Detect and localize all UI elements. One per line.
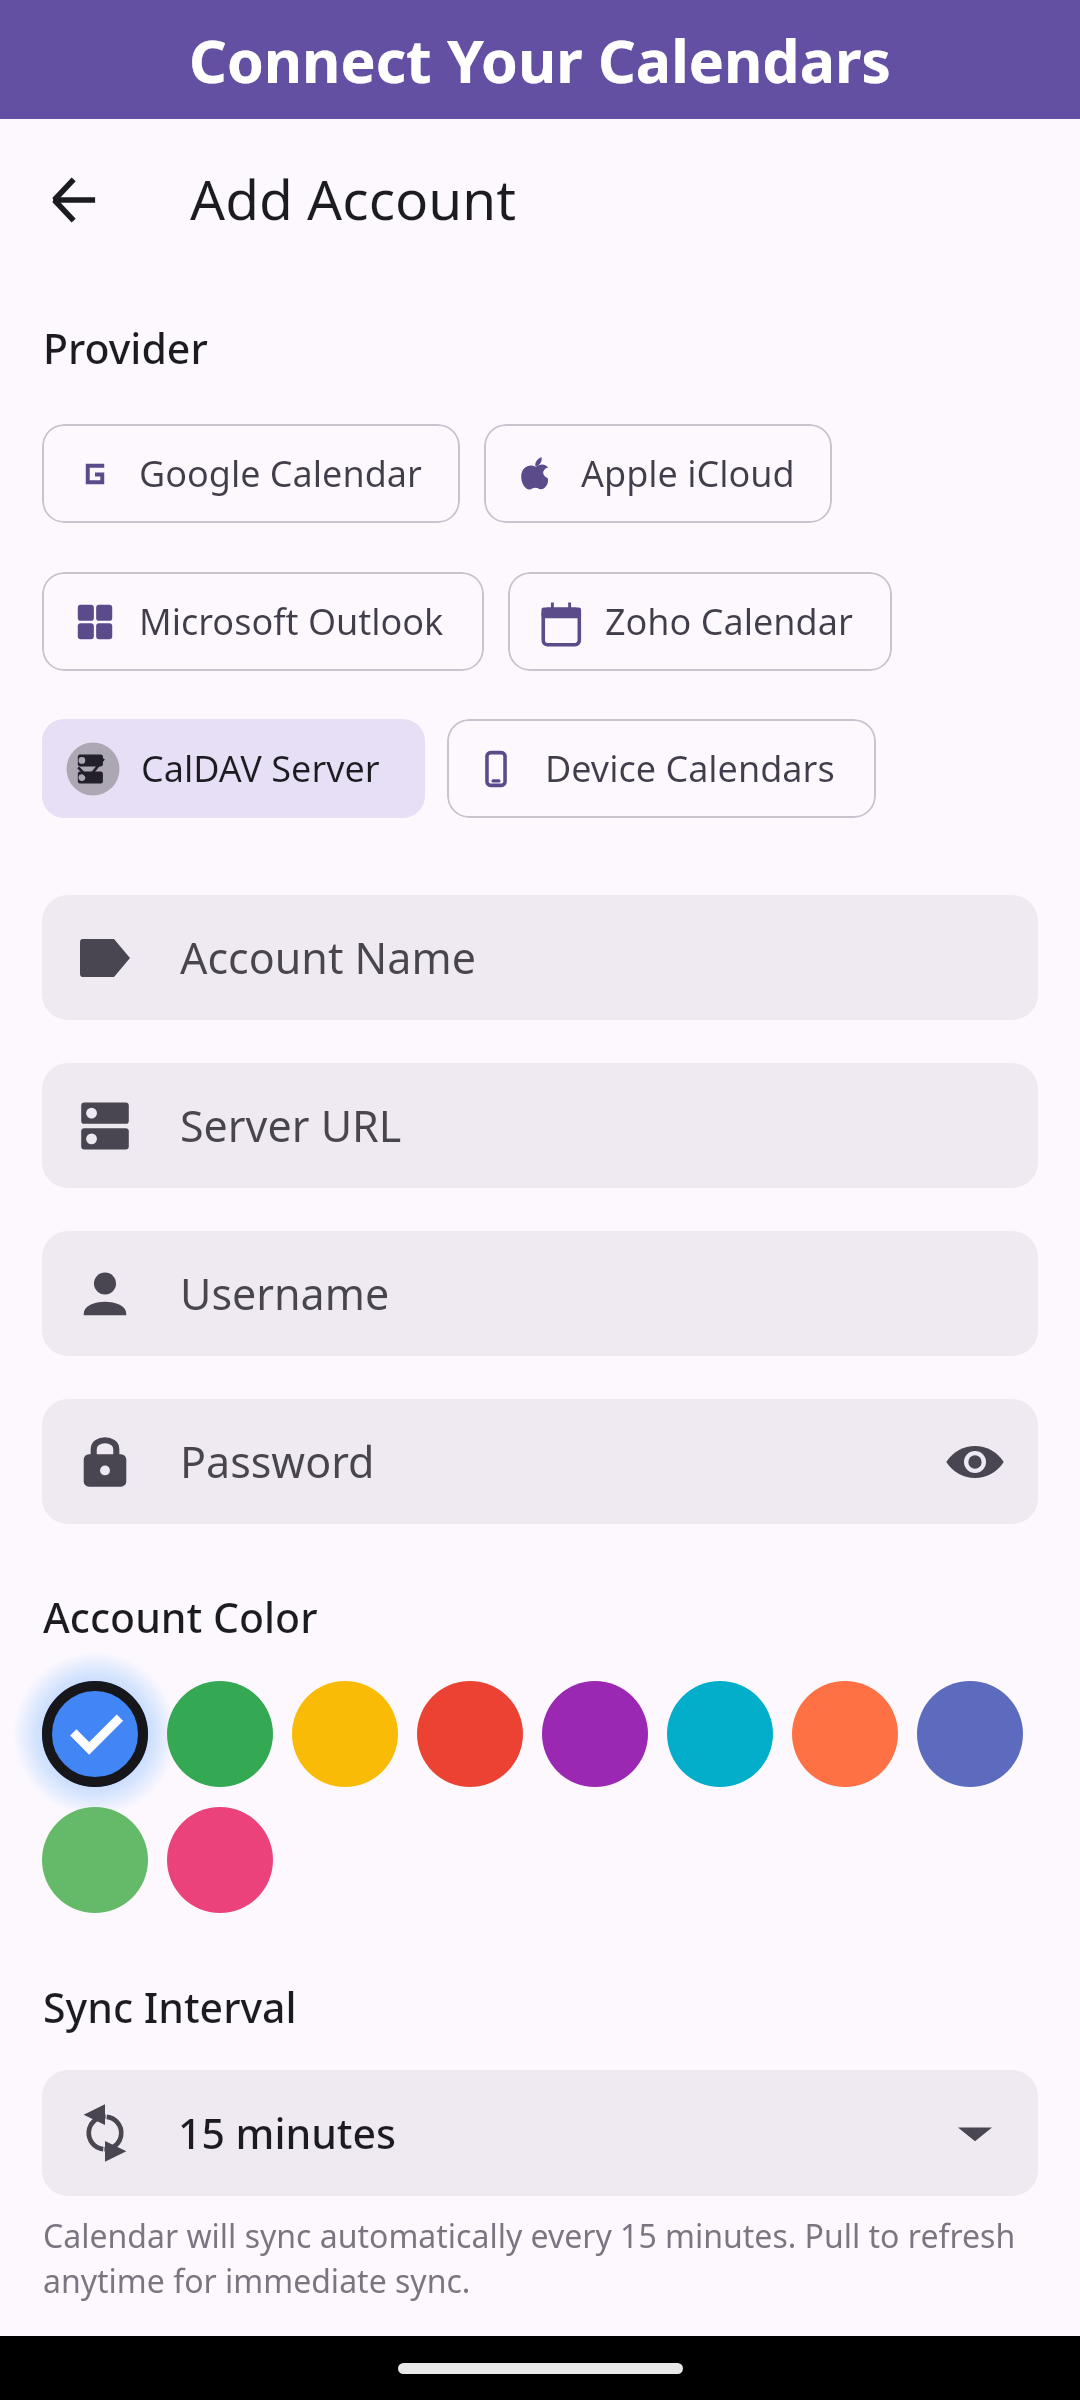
button[interactable]: Colour swatch [292, 1681, 398, 1787]
staticText: Google Calendar [139, 449, 422, 498]
button[interactable]: Colour swatch [792, 1681, 898, 1787]
button[interactable]: Back [28, 150, 128, 250]
staticText: Account Name [180, 928, 476, 987]
button[interactable]: Password [42, 1399, 1038, 1524]
button[interactable]: Colour swatch [167, 1807, 273, 1913]
staticText: Username [180, 1264, 390, 1323]
staticText: Account Color [43, 1589, 318, 1645]
button[interactable]: Colour swatch [167, 1681, 273, 1787]
button[interactable]: Colour swatch [542, 1681, 648, 1787]
staticText: CalDAV Server [141, 744, 380, 793]
button[interactable]: 15 minutes [42, 2070, 1038, 2196]
button[interactable]: Device Calendars [447, 719, 876, 818]
staticText: Zoho Calendar [605, 597, 853, 646]
button[interactable]: Colour swatch [417, 1681, 523, 1787]
button[interactable]: Server URL [42, 1063, 1038, 1188]
button[interactable]: Colour swatch [42, 1681, 148, 1787]
staticText: Calendar will sync automatically every 1… [43, 2214, 1038, 2303]
button[interactable]: Apple iCloud [484, 424, 832, 523]
staticText: Password [180, 1432, 375, 1491]
staticText: Device Calendars [545, 744, 835, 793]
staticText: Sync Interval [43, 1979, 297, 2035]
button[interactable]: Colour swatch [917, 1681, 1023, 1787]
button[interactable]: Username [42, 1231, 1038, 1356]
staticText: 15 minutes [178, 2105, 397, 2161]
button[interactable]: Google Calendar [42, 424, 460, 523]
staticText: Microsoft Outlook [139, 597, 444, 646]
button[interactable]: Colour swatch [42, 1807, 148, 1913]
button[interactable]: Microsoft Outlook [42, 572, 484, 671]
button[interactable]: CalDAV Server [42, 719, 425, 818]
staticText: Add Account [190, 161, 517, 236]
staticText: Server URL [180, 1096, 402, 1155]
button[interactable]: Zoho Calendar [508, 572, 892, 671]
button[interactable]: Colour swatch [667, 1681, 773, 1787]
staticText: Apple iCloud [581, 449, 795, 498]
button[interactable]: Account Name [42, 895, 1038, 1020]
staticText: Connect Your Calendars [189, 20, 891, 100]
staticText: Provider [43, 320, 208, 376]
